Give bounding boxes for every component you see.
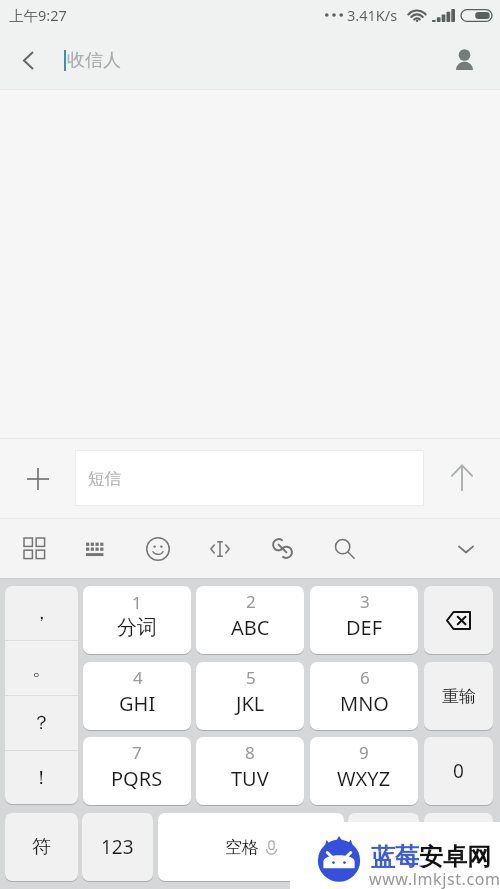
- staticText: 安卓网: [419, 842, 491, 872]
- staticText: 5: [246, 666, 256, 689]
- button[interactable]: 7: [83, 737, 191, 805]
- button[interactable]: 符: [5, 813, 78, 881]
- button[interactable]: 符号: [348, 813, 419, 881]
- button[interactable]: 重输: [424, 662, 493, 730]
- staticText: ABC: [231, 614, 270, 641]
- button[interactable]: 4: [83, 662, 191, 730]
- button[interactable]: 8: [196, 737, 304, 805]
- button[interactable]: 1: [83, 586, 191, 654]
- staticText: 蓝莓: [371, 842, 419, 872]
- button[interactable]: Keyboard: [65, 519, 127, 578]
- button[interactable]: [424, 813, 493, 881]
- staticText: 8: [245, 741, 255, 764]
- staticText: 9: [359, 741, 369, 764]
- button[interactable]: Search: [313, 519, 375, 578]
- button[interactable]: Send: [427, 442, 497, 512]
- staticText: WXYZ: [337, 765, 391, 792]
- staticText: PQRS: [111, 765, 163, 792]
- staticText: 符号: [365, 835, 403, 859]
- staticText: 2: [246, 590, 256, 613]
- staticText: 上午9:27: [9, 5, 67, 25]
- button[interactable]: 3: [310, 586, 418, 654]
- staticText: TUV: [231, 765, 269, 792]
- button[interactable]: ，: [5, 586, 78, 640]
- button[interactable]: Emoji: [127, 519, 189, 578]
- staticText: 3.41K/s: [347, 5, 398, 25]
- button[interactable]: ？: [5, 696, 78, 750]
- staticText: MNO: [340, 690, 389, 717]
- button[interactable]: 短信: [75, 450, 424, 506]
- staticText: www.lmkjst.com: [369, 868, 500, 889]
- button[interactable]: 9: [310, 737, 418, 805]
- button[interactable]: 123: [82, 813, 153, 881]
- staticText: 7: [132, 741, 142, 764]
- button[interactable]: Apps: [3, 519, 65, 578]
- staticText: 符: [32, 835, 51, 859]
- button[interactable]: 空格: [158, 813, 344, 881]
- staticText: 0: [453, 758, 464, 784]
- staticText: 收信人: [67, 49, 121, 72]
- staticText: 短信: [88, 468, 121, 489]
- staticText: ！: [32, 766, 51, 790]
- staticText: 3: [360, 590, 370, 613]
- staticText: ，: [32, 601, 51, 625]
- staticText: 1: [132, 591, 142, 614]
- staticText: 4: [133, 666, 143, 689]
- staticText: GHI: [119, 690, 156, 717]
- staticText: 6: [360, 666, 370, 689]
- button[interactable]: 0: [424, 737, 493, 805]
- button[interactable]: Cursor: [189, 519, 251, 578]
- button[interactable]: 2: [196, 586, 304, 654]
- button[interactable]: 。: [5, 641, 78, 695]
- button[interactable]: Add attachment: [10, 451, 66, 507]
- staticText: 空格: [225, 837, 259, 858]
- button[interactable]: Contacts: [436, 32, 492, 88]
- staticText: 。: [32, 656, 52, 681]
- staticText: 重输: [442, 686, 476, 707]
- button[interactable]: Hide keyboard: [440, 523, 492, 575]
- button[interactable]: Back: [4, 36, 52, 84]
- staticText: 分词: [117, 615, 157, 640]
- button[interactable]: 5: [196, 662, 304, 730]
- staticText: DEF: [346, 614, 383, 641]
- button[interactable]: Backspace: [424, 586, 493, 654]
- staticText: JKL: [236, 690, 265, 717]
- staticText: 123: [101, 834, 134, 860]
- button[interactable]: ！: [5, 751, 78, 804]
- button[interactable]: Clipboard: [251, 519, 313, 578]
- staticText: ？: [32, 711, 51, 735]
- button[interactable]: 6: [310, 662, 418, 730]
